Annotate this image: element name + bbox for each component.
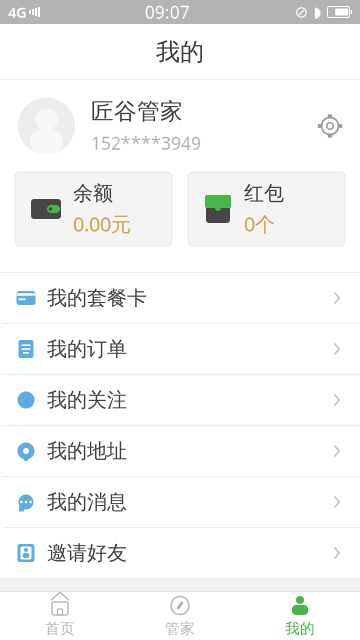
staticText: 匠谷管家 <box>91 98 183 125</box>
staticText: ⊘ <box>294 3 307 21</box>
staticText: 我的消息 <box>47 490 127 514</box>
staticText: 我的地址 <box>47 439 127 463</box>
staticText: 我的 <box>156 37 204 67</box>
staticText: ◗ <box>313 4 321 20</box>
button[interactable]: 红包 <box>188 172 345 246</box>
staticText: 我的关注 <box>47 388 127 412</box>
staticText: 0个 <box>244 210 275 237</box>
button[interactable]: 我的 <box>240 592 360 640</box>
button[interactable]: 管家 <box>120 592 240 640</box>
staticText: 邀请好友 <box>47 541 127 565</box>
staticText: 152****3949 <box>91 131 201 154</box>
staticText: 09:07 <box>145 0 190 23</box>
staticText: 管家 <box>165 619 195 637</box>
staticText: 我的订单 <box>47 337 127 361</box>
button[interactable]: 邀请好友 <box>0 528 360 579</box>
staticText: 余额 <box>73 181 113 205</box>
button[interactable]: 我的地址 <box>0 426 360 477</box>
button[interactable]: 首页 <box>0 592 120 640</box>
staticText: 4G <box>8 2 27 22</box>
button[interactable]: ★ <box>0 375 360 426</box>
staticText: ★ <box>16 387 36 413</box>
button[interactable]: 余额 <box>15 172 172 246</box>
staticText: 首页 <box>45 619 75 637</box>
staticText: 红包 <box>244 181 284 205</box>
staticText: 我的套餐卡 <box>47 286 147 310</box>
button[interactable]: 我的订单 <box>0 324 360 375</box>
button[interactable]: 我的套餐卡 <box>0 272 360 324</box>
button[interactable]: Settings <box>308 104 352 148</box>
staticText: 我的 <box>285 619 315 637</box>
staticText: 0.00元 <box>73 210 131 237</box>
button[interactable]: 我的消息 <box>0 477 360 528</box>
